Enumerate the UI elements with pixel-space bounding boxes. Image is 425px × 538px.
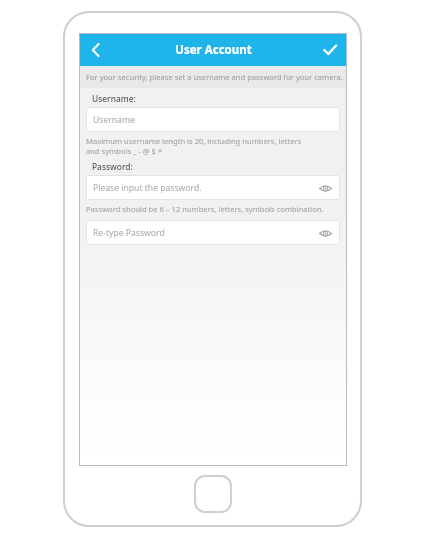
staticText: Maximum username length is 20, including… — [86, 136, 302, 146]
staticText: Username — [93, 114, 135, 126]
staticText: User Account — [175, 42, 252, 58]
button[interactable]: Home — [194, 475, 232, 513]
button[interactable]: Back — [79, 33, 113, 66]
button[interactable]: Confirm — [313, 33, 347, 66]
staticText: Password: — [92, 161, 133, 172]
button[interactable]: Show password — [315, 223, 335, 243]
staticText: and symbols _ - @ $ * — [86, 146, 163, 156]
staticText: Please input the password. — [93, 182, 202, 194]
staticText: Password should be 6 – 12 numbers, lette… — [86, 204, 324, 214]
button[interactable]: Please input the password. — [86, 175, 340, 200]
staticText: Username: — [92, 93, 136, 104]
button[interactable]: Show password — [315, 178, 335, 198]
staticText: For your security, please set a username… — [86, 72, 343, 82]
button[interactable]: Re-type Password — [86, 220, 340, 245]
staticText: Re-type Password — [93, 227, 165, 239]
button[interactable]: Username — [86, 107, 340, 132]
